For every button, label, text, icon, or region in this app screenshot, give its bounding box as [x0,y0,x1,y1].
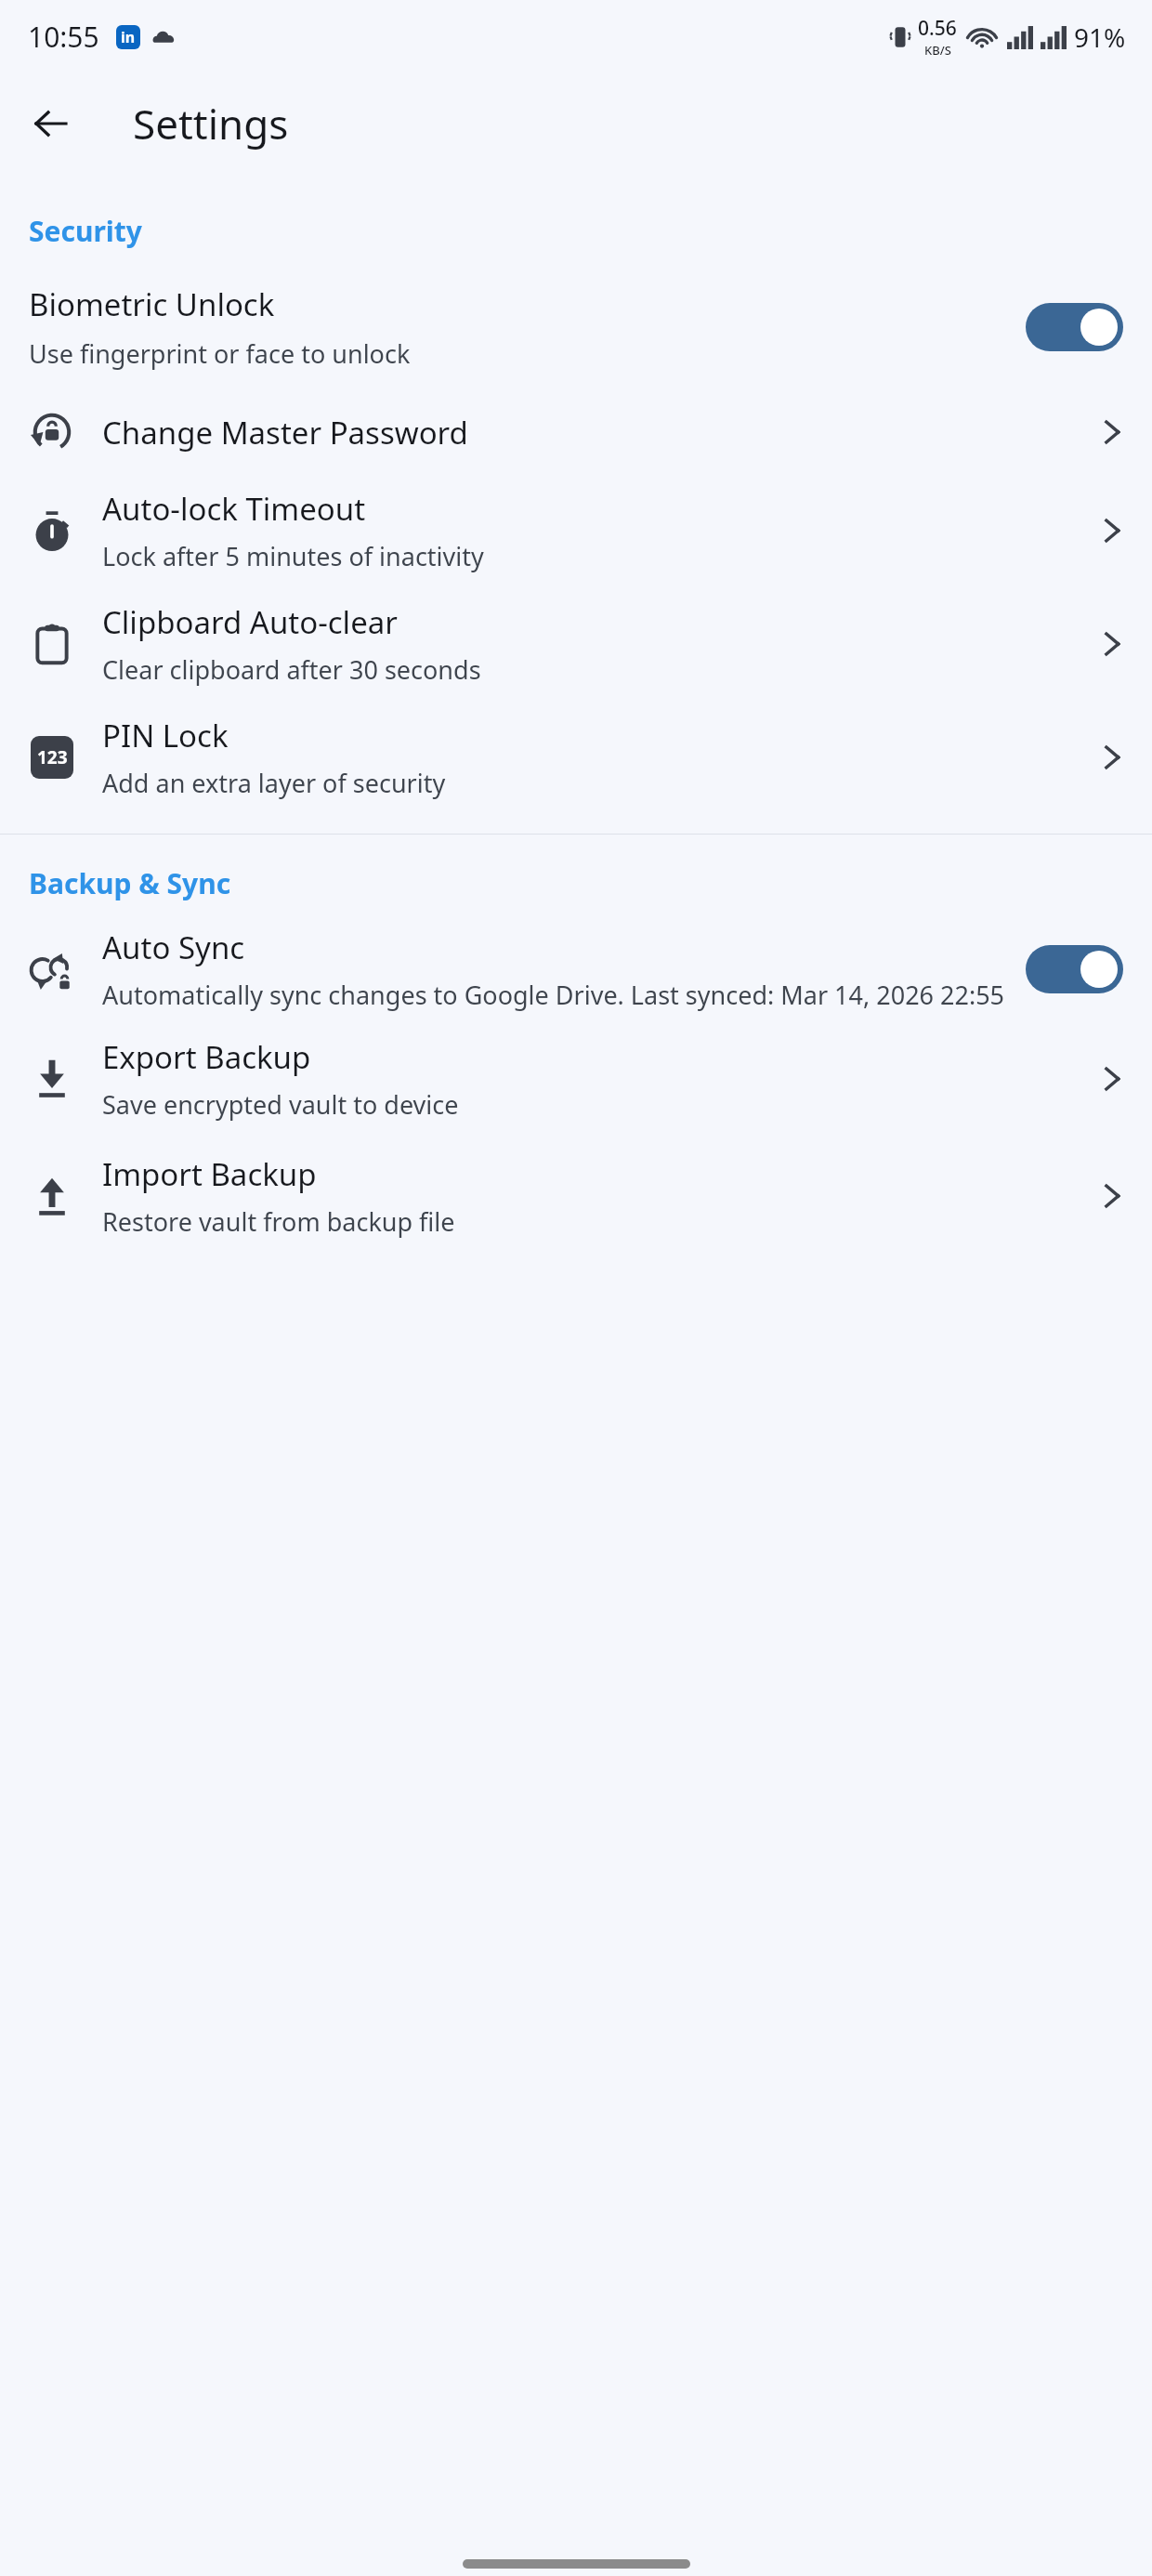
staticText: Clipboard Auto-clear [102,601,398,643]
staticText: Security [29,212,142,250]
staticText: KB/S [924,42,951,59]
staticText: 10:55 [28,18,99,56]
staticText: PIN Lock [102,715,229,756]
staticText: Auto-lock Timeout [102,488,366,530]
button[interactable]: Export Backup [0,1031,1152,1127]
staticText: Settings [133,96,289,151]
button[interactable]: Import Backup [0,1148,1152,1244]
staticText: Backup & Sync [29,864,231,902]
staticText: 123 [37,745,68,769]
staticText: 91% [1074,20,1126,55]
staticText: Import Backup [102,1153,317,1195]
staticText: Export Backup [102,1036,311,1078]
staticText: 0.56 [918,15,957,42]
staticText: Save encrypted vault to device [102,1087,459,1122]
staticText: Add an extra layer of security [102,766,446,800]
staticText: Use fingerprint or face to unlock [29,336,411,371]
button[interactable]: Toggle on [1026,303,1123,351]
button[interactable]: Change Master Password [0,399,1152,466]
staticText: in [121,27,136,47]
staticText: Biometric Unlock [29,283,275,325]
button[interactable]: Auto-lock Timeout [0,482,1152,579]
staticText: Lock after 5 minutes of inactivity [102,539,484,573]
button[interactable]: Clipboard Auto-clear [0,596,1152,692]
button[interactable]: Auto Sync [0,927,1152,1012]
staticText: Restore vault from backup file [102,1204,455,1239]
staticText: Clear clipboard after 30 seconds [102,652,481,687]
staticText: Auto Sync [102,927,245,968]
button[interactable]: 123 [0,709,1152,806]
button[interactable]: Toggle on [1026,945,1123,993]
button[interactable]: Back [20,93,82,154]
staticText: Change Master Password [102,412,468,453]
button[interactable]: Biometric Unlock [0,278,1152,376]
staticText: Automatically sync changes to Google Dri… [102,978,1005,1012]
